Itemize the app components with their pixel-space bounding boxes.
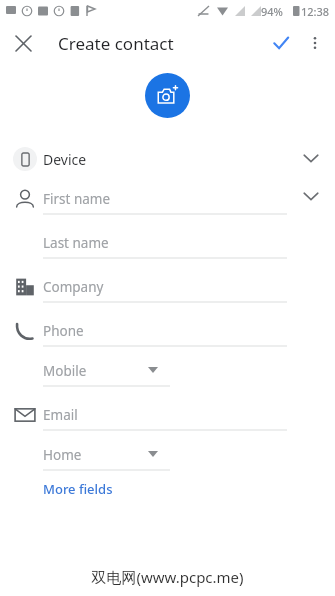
button[interactable]: Last name [0, 215, 335, 259]
button[interactable]: Close [6, 26, 40, 60]
button[interactable]: Device [0, 138, 335, 180]
staticText: First name [43, 190, 111, 208]
button[interactable]: First name [0, 180, 335, 215]
staticText: Last name [43, 234, 109, 252]
staticText: More fields [43, 480, 113, 498]
staticText: Mobile [43, 362, 87, 380]
button[interactable]: Save contact [263, 25, 299, 61]
staticText: Create contact [58, 32, 174, 55]
button[interactable]: More fields [43, 480, 113, 498]
button[interactable]: Email [0, 387, 335, 431]
staticText: Company [43, 278, 104, 296]
button[interactable]: Company [0, 259, 335, 303]
button[interactable]: Phone [0, 303, 335, 347]
staticText: 12:38 [301, 4, 330, 19]
staticText: 94% [261, 4, 283, 19]
staticText: Email [43, 406, 78, 424]
staticText: Phone [43, 322, 84, 340]
button[interactable]: Home [0, 431, 335, 471]
staticText: Home [43, 446, 82, 464]
button[interactable]: Add photo [145, 73, 190, 118]
button[interactable]: Mobile [0, 347, 335, 387]
staticText: 双电网(www.pcpc.me) [0, 567, 335, 587]
staticText: Device [43, 150, 87, 169]
button[interactable]: More options [299, 27, 331, 59]
